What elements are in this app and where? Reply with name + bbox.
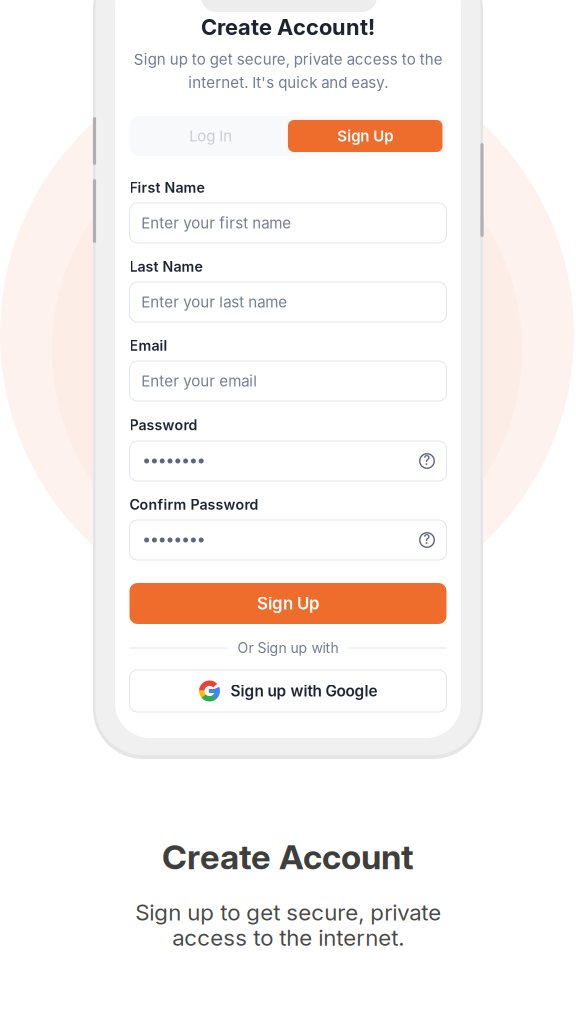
staticText: Password (129, 416, 197, 433)
staticText: Sign up with Google (230, 682, 377, 700)
staticText: Sign Up (257, 593, 319, 614)
button[interactable]: Sign Up (288, 120, 442, 152)
staticText: Sign Up (337, 127, 393, 145)
staticText: Confirm Password (129, 496, 258, 513)
staticText: ? (423, 532, 430, 547)
button[interactable]: Enter your email (129, 361, 446, 401)
staticText: Email (129, 337, 167, 354)
button[interactable]: Sign Up (129, 583, 446, 624)
button[interactable]: ? (129, 441, 446, 481)
staticText: Enter your last name (141, 293, 287, 311)
button[interactable]: Sign up with Google (129, 670, 446, 712)
button[interactable]: ? (129, 520, 446, 560)
staticText: ? (423, 453, 430, 468)
staticText: Create Account (162, 836, 414, 877)
staticText: Enter your first name (141, 214, 291, 232)
staticText: First Name (129, 179, 204, 196)
button[interactable]: Enter your last name (129, 282, 446, 322)
button[interactable]: Enter your first name (129, 203, 446, 243)
staticText: Sign up to get secure, private access to… (135, 899, 441, 951)
staticText: Or Sign up with (237, 639, 338, 656)
staticText: Log In (189, 127, 232, 145)
staticText: Enter your email (141, 372, 257, 390)
staticText: Last Name (129, 258, 202, 275)
staticText: Create Account! (201, 14, 375, 40)
button[interactable]: Log In (133, 120, 288, 152)
staticText: Sign up to get secure, private access to… (133, 50, 442, 92)
